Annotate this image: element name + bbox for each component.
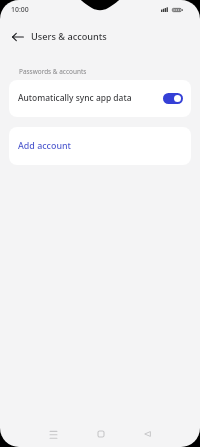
button[interactable]: Home [89,422,113,446]
button[interactable]: Back [135,422,159,446]
staticText: Add account [18,139,71,151]
staticText: 10:00 [11,5,29,14]
button[interactable]: Back [6,25,30,49]
staticText: Passwords & accounts [19,67,87,76]
button[interactable]: Automatically sync app data [163,93,183,104]
button[interactable]: Recents [41,422,65,446]
staticText: Automatically sync app data [18,92,132,104]
staticText: Users & accounts [31,30,107,43]
button[interactable]: Add account [9,127,191,165]
button[interactable]: Automatically sync app data [9,80,191,117]
